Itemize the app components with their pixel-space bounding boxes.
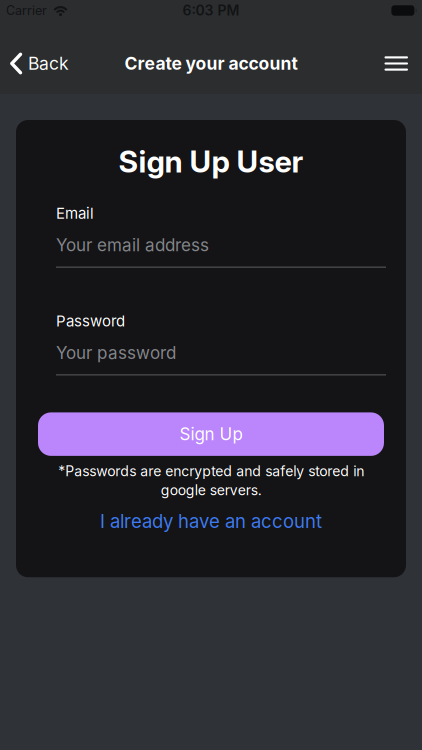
button[interactable]: Sign Up [38,412,384,456]
button[interactable]: Your email address [16,235,406,268]
staticText: Your password [56,343,176,363]
button[interactable]: Your password [16,343,406,375]
staticText: Sign Up User [118,144,303,179]
staticText: Carrier [6,3,47,18]
button[interactable]: Menu [384,56,422,71]
staticText: Back [28,53,69,74]
staticText: Create your account [124,53,297,74]
button[interactable]: I already have an account [100,510,322,532]
staticText: 6:03 PM [182,2,239,19]
staticText: Email [56,204,94,222]
staticText: Your email address [56,235,209,255]
button[interactable]: Back [0,52,69,74]
staticText: *Passwords are encrypted and safely stor… [58,463,364,498]
staticText: Password [56,312,125,330]
staticText: I already have an account [100,510,322,532]
staticText: Sign Up [179,424,242,444]
